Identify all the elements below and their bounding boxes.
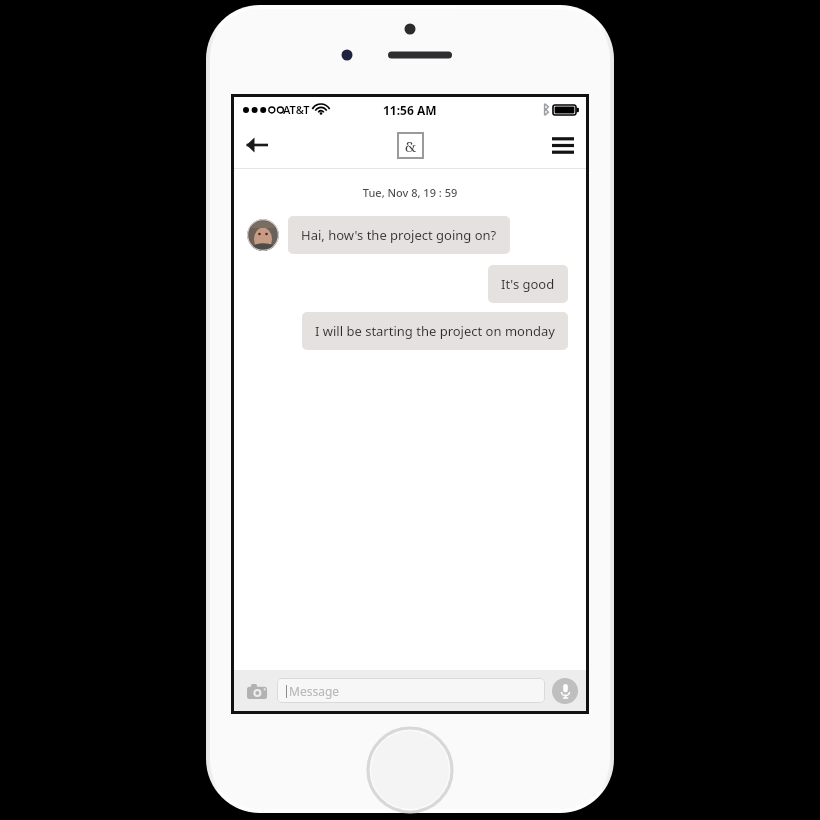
button[interactable]: Hai, how's the project going on? (288, 216, 510, 254)
staticText: Tue, Nov 8, 19 : 59 (234, 185, 586, 200)
staticText: & (405, 136, 417, 156)
staticText: AT&T (283, 102, 310, 117)
button[interactable]: Back (234, 122, 280, 168)
button[interactable]: Voice message (552, 678, 578, 704)
staticText: It's good (501, 275, 555, 293)
staticText: Hai, how's the project going on? (301, 226, 497, 244)
button[interactable]: It's good (488, 265, 568, 303)
other: Contact photo (247, 219, 279, 251)
button[interactable]: Message (277, 678, 545, 703)
button[interactable]: Logo (397, 132, 424, 159)
button[interactable]: Menu (540, 122, 586, 168)
staticText: 11:56 AM (383, 102, 437, 118)
staticText: I will be starting the project on monday (315, 322, 555, 340)
button[interactable]: Camera (242, 676, 272, 706)
staticText: Message (289, 683, 340, 699)
button[interactable]: I will be starting the project on monday (302, 312, 568, 350)
